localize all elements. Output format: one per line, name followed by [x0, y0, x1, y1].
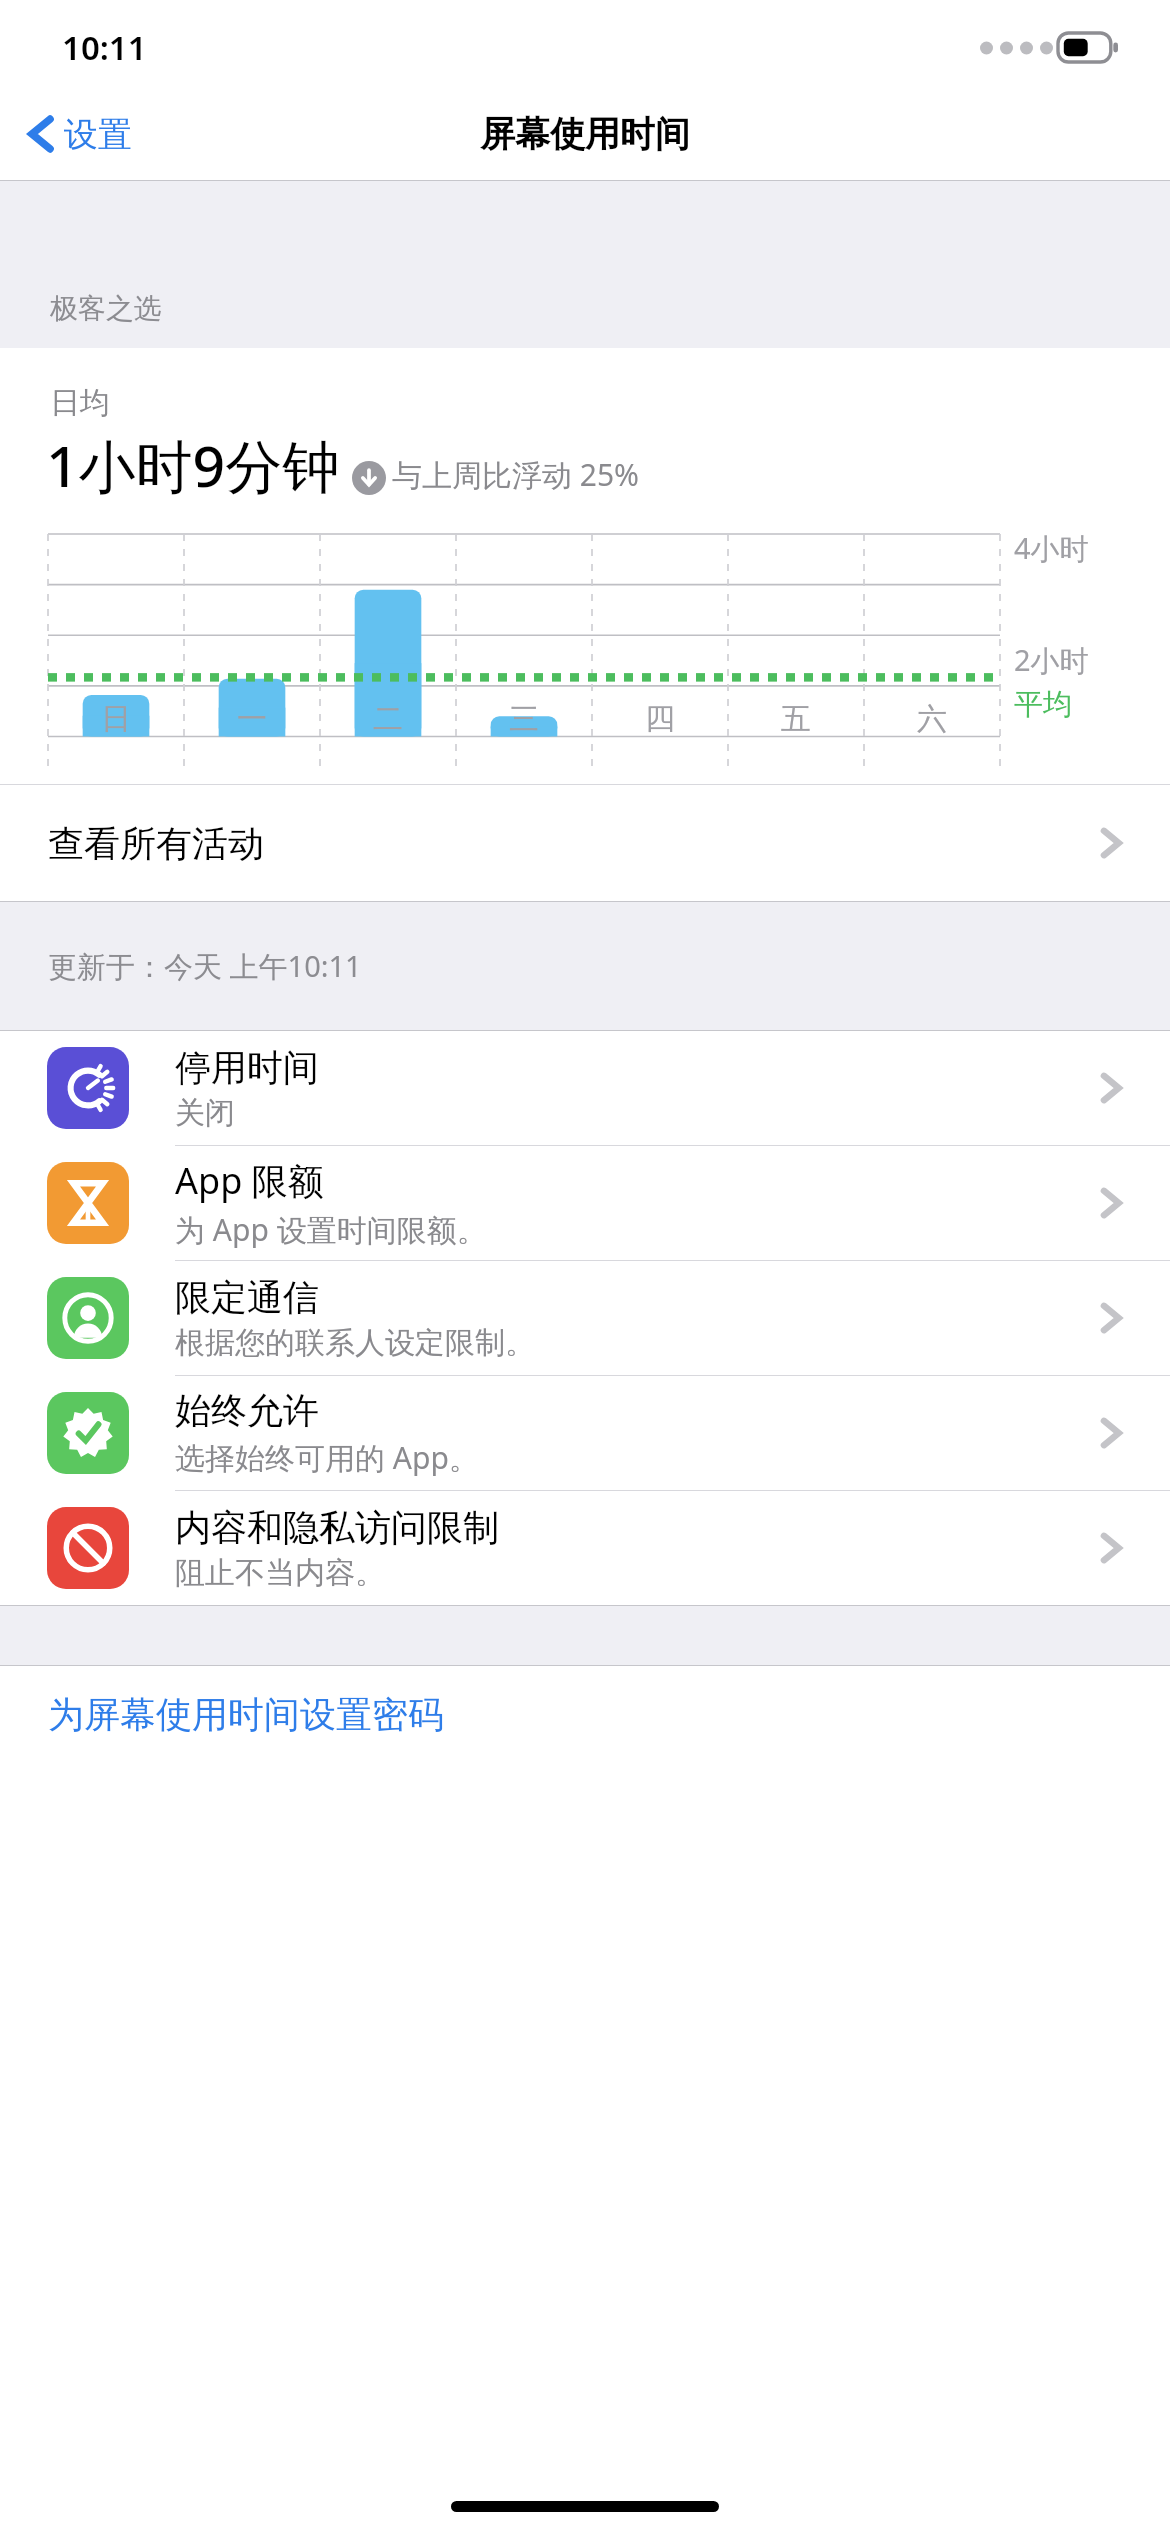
staticText: 日均 [50, 384, 110, 422]
staticText: 限定通信 [175, 1275, 319, 1320]
staticText: 停用时间 [175, 1045, 319, 1090]
staticText: 内容和隐私访问限制 [175, 1505, 499, 1550]
staticText: 三 [509, 700, 539, 738]
button[interactable]: 停用时间 [0, 1031, 1170, 1145]
other: 限定通信 [59, 1289, 117, 1347]
button[interactable]: 内容和隐私访问限制 [0, 1491, 1170, 1605]
staticText: 五 [781, 700, 811, 738]
button[interactable]: 始终允许 [0, 1376, 1170, 1490]
staticText: 关闭 [175, 1094, 235, 1132]
staticText: 阻止不当内容。 [175, 1554, 385, 1592]
staticText: 10:11 [62, 25, 147, 70]
other: 始终允许 [59, 1404, 117, 1462]
staticText: 屏幕使用时间 [480, 112, 690, 156]
button[interactable]: 设置 [18, 104, 142, 164]
staticText: 为 App 设置时间限额。 [175, 1209, 487, 1250]
staticText: 二 [373, 700, 403, 738]
staticText: 四 [645, 700, 675, 738]
button[interactable]: 限定通信 [0, 1261, 1170, 1375]
staticText: 平均 [1014, 686, 1072, 723]
staticText: 1小时9分钟 [46, 426, 340, 504]
staticText: 查看所有活动 [48, 821, 264, 866]
other: 停用时间 [59, 1059, 117, 1117]
staticText: 设置 [64, 113, 132, 156]
staticText: 日 [101, 700, 131, 738]
staticText: 极客之选 [50, 291, 162, 326]
staticText: 根据您的联系人设定限制。 [175, 1324, 535, 1362]
button[interactable]: App 限额 [0, 1146, 1170, 1260]
staticText: 2小时 [1014, 640, 1089, 680]
button[interactable]: 查看所有活动 [0, 785, 1170, 901]
staticText: 选择始终可用的 App。 [175, 1437, 479, 1478]
button[interactable]: 为屏幕使用时间设置密码 [0, 1666, 1170, 1762]
other: 内容和隐私访问限制 [59, 1519, 117, 1577]
staticText: 一 [237, 700, 267, 738]
staticText: App 限额 [175, 1156, 324, 1205]
staticText: 更新于：今天 上午10:11 [48, 946, 362, 986]
staticText: 始终允许 [175, 1388, 319, 1433]
staticText: 与上周比浮动 25% [392, 454, 640, 495]
other: App 限额 [59, 1174, 117, 1232]
staticText: 六 [917, 700, 947, 738]
staticText: 为屏幕使用时间设置密码 [48, 1692, 444, 1737]
staticText: 4小时 [1014, 528, 1089, 568]
